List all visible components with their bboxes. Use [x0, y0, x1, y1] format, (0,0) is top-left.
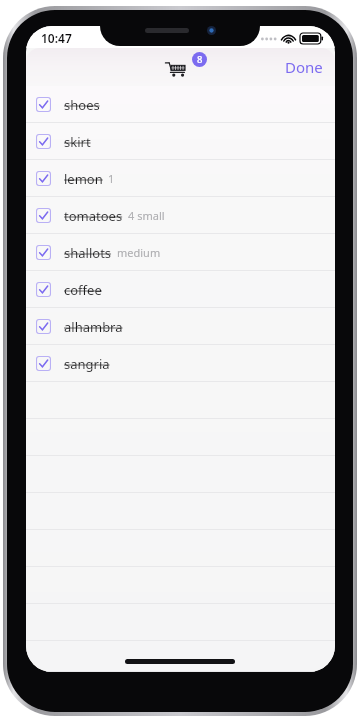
button[interactable]: shallots: [26, 234, 335, 271]
button[interactable]: shoes: [26, 86, 335, 123]
button[interactable]: skirt: [26, 123, 335, 160]
button[interactable]: alhambra: [26, 308, 335, 345]
staticText: skirt: [64, 133, 91, 151]
button[interactable]: Cart, 8 items: [163, 51, 209, 83]
staticText: tomatoes: [64, 207, 123, 225]
staticText: 1: [108, 171, 115, 186]
button[interactable]: tomatoes: [26, 197, 335, 234]
staticText: lemon: [64, 170, 103, 188]
staticText: 4 small: [128, 208, 165, 223]
staticText: shoes: [64, 96, 100, 114]
button[interactable]: coffee: [26, 271, 335, 308]
staticText: coffee: [64, 281, 102, 299]
staticText: 10:47: [41, 30, 72, 46]
button[interactable]: Done: [273, 50, 335, 84]
staticText: 8: [197, 53, 203, 66]
staticText: sangria: [64, 355, 110, 373]
staticText: medium: [117, 245, 161, 260]
staticText: shallots: [64, 244, 112, 262]
button[interactable]: lemon: [26, 160, 335, 197]
button[interactable]: sangria: [26, 345, 335, 382]
staticText: alhambra: [64, 318, 123, 336]
staticText: Done: [285, 57, 323, 77]
